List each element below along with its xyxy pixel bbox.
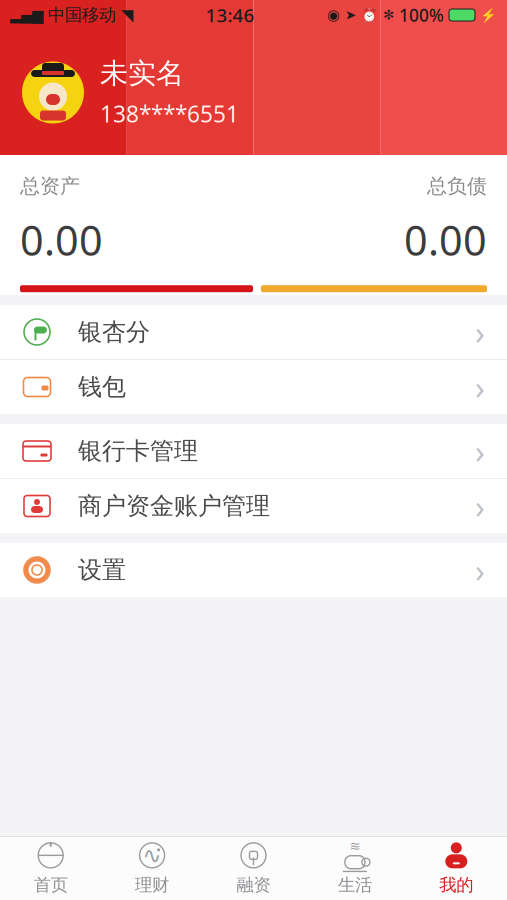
staticText: 商户资金账户管理 (78, 491, 270, 521)
button[interactable]: ∿ (101, 837, 203, 900)
staticText: ⏰ (361, 7, 378, 23)
staticText: 总负债 (427, 174, 487, 198)
staticText: › (475, 430, 485, 472)
button[interactable]: 钱包 (0, 360, 507, 414)
staticText: ≋ (349, 839, 360, 854)
staticText: 中国移动 (48, 4, 116, 26)
staticText: ✻ (383, 7, 394, 22)
button[interactable]: 银杏分 (0, 305, 507, 359)
staticText: 13:46 (205, 3, 254, 27)
staticText: 0.00 (404, 212, 487, 267)
staticText: › (475, 549, 485, 591)
staticText: › (475, 311, 485, 353)
button[interactable]: 融资 (203, 837, 304, 900)
button[interactable]: ≋ (304, 837, 406, 900)
staticText: 首页 (34, 874, 68, 896)
staticText: 总资产 (20, 174, 80, 198)
button[interactable]: 商户资金账户管理 (0, 479, 507, 533)
staticText: 设置 (78, 555, 126, 585)
staticText: ◥ (121, 6, 133, 24)
staticText: 钱包 (78, 372, 126, 402)
staticText: 0.00 (20, 212, 103, 267)
staticText: 银行卡管理 (78, 436, 198, 466)
staticText: ▂▄▆ (10, 7, 43, 23)
staticText: 我的 (439, 874, 473, 896)
staticText: 理财 (135, 874, 169, 896)
staticText: 100% (399, 3, 444, 26)
button[interactable]: 首页 (0, 837, 101, 900)
staticText: › (475, 366, 485, 408)
staticText: 融资 (236, 874, 270, 896)
staticText: ∿ (143, 842, 162, 868)
staticText: › (475, 485, 485, 527)
staticText: ⚡ (480, 7, 497, 23)
button[interactable]: 银行卡管理 (0, 424, 507, 478)
button[interactable]: 我的 (406, 837, 507, 900)
staticText: ◉ (327, 7, 340, 23)
button[interactable]: 设置 (0, 543, 507, 597)
staticText: 银杏分 (78, 317, 150, 347)
staticText: 生活 (338, 874, 372, 896)
staticText: 未实名 (100, 56, 184, 91)
staticText: 138****6551 (100, 99, 239, 129)
staticText: ➤ (345, 7, 356, 22)
